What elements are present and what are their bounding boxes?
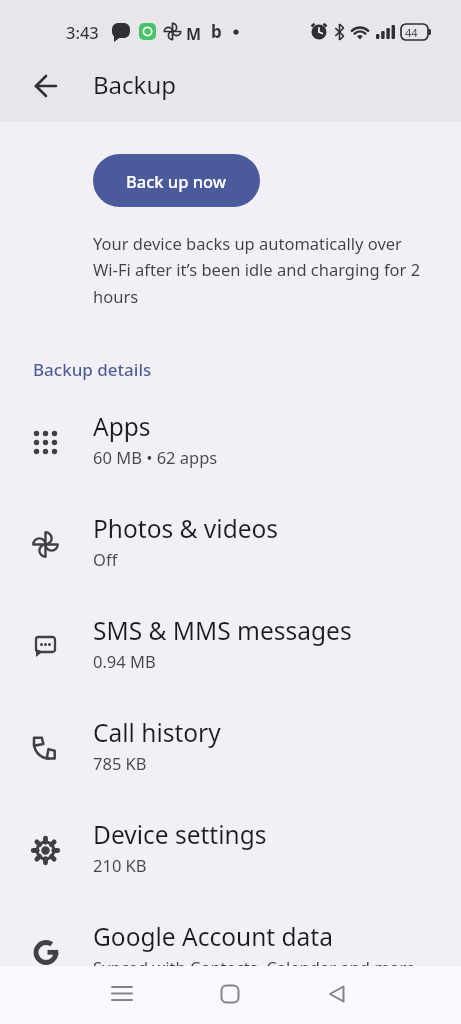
staticText: 44: [405, 25, 418, 40]
staticText: Apps: [93, 410, 151, 443]
button[interactable]: Call history: [0, 711, 461, 812]
staticText: 60 MB • 62 apps: [93, 446, 218, 468]
button[interactable]: Photos & videos: [0, 507, 461, 608]
button[interactable]: [313, 980, 361, 1008]
staticText: Device settings: [93, 818, 267, 851]
staticText: Your device backs up automatically over …: [93, 232, 421, 308]
staticText: Google Account data: [93, 920, 333, 953]
staticText: Call history: [93, 716, 221, 749]
button[interactable]: Apps: [0, 405, 461, 506]
staticText: M: [186, 23, 202, 45]
staticText: b: [211, 20, 222, 43]
staticText: 785 KB: [93, 752, 147, 774]
button[interactable]: Device settings: [0, 813, 461, 914]
staticText: Off: [93, 548, 118, 570]
staticText: SMS & MMS messages: [93, 614, 352, 647]
staticText: Back up now: [126, 170, 227, 192]
staticText: 0.94 MB: [93, 650, 156, 672]
staticText: Backup: [93, 68, 176, 101]
button[interactable]: Google Account data: [0, 915, 461, 1016]
button[interactable]: [98, 980, 146, 1008]
staticText: 3:43: [66, 21, 99, 43]
staticText: 210 KB: [93, 854, 147, 876]
staticText: Backup details: [33, 358, 152, 381]
staticText: Synced with Contacts, Calendar and more: [93, 956, 416, 978]
button[interactable]: Back up now: [93, 154, 260, 207]
button[interactable]: [28, 68, 64, 104]
staticText: Photos & videos: [93, 512, 279, 545]
button[interactable]: [206, 980, 254, 1008]
button[interactable]: SMS & MMS messages: [0, 609, 461, 710]
